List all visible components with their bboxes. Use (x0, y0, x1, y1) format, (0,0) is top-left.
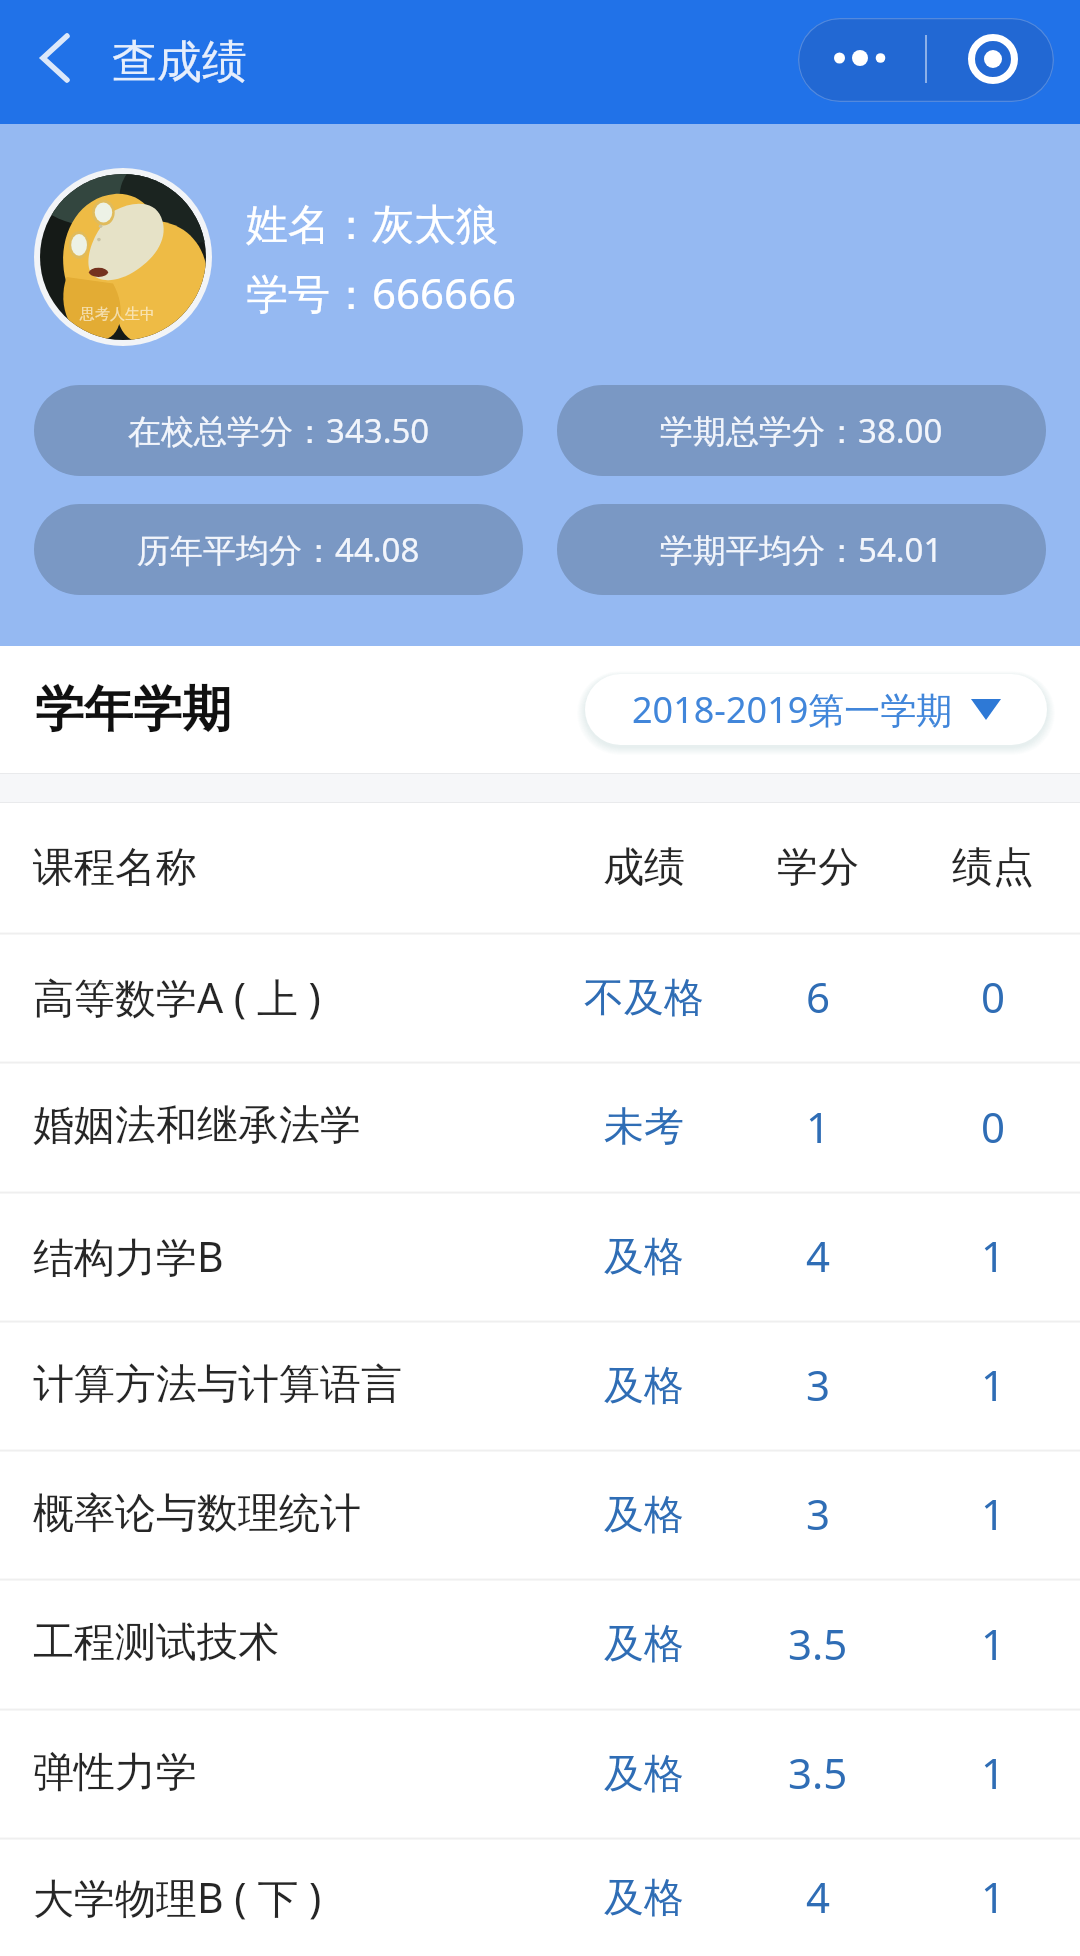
staticText: 2018-2019第一学期 (632, 685, 953, 734)
staticText: 及格 (604, 1872, 684, 1922)
staticText: 绩点 (952, 842, 1034, 894)
staticText: 1 (981, 1356, 1006, 1413)
button[interactable]: 弹性力学 (0, 1708, 1080, 1837)
button[interactable]: Back (20, 20, 92, 92)
staticText: 3 (806, 1356, 831, 1413)
staticText: 及格 (604, 1748, 684, 1798)
staticText: 0 (981, 1098, 1006, 1155)
button[interactable]: 学期平均分：54.01 (557, 504, 1046, 595)
staticText: 6 (806, 968, 831, 1025)
button[interactable]: 学期总学分：38.00 (557, 385, 1046, 476)
staticText: 历年平均分：44.08 (137, 527, 420, 572)
staticText: 及格 (604, 1618, 684, 1668)
staticText: 及格 (604, 1489, 684, 1539)
staticText: 4 (806, 1868, 831, 1925)
staticText: 4 (806, 1227, 831, 1284)
button[interactable]: 在校总学分：343.50 (34, 385, 523, 476)
staticText: 高等数学A ( 上 ) (33, 969, 321, 1025)
staticText: 思考人生中 (80, 305, 155, 324)
staticText: 1 (981, 1744, 1006, 1801)
button[interactable]: 结构力学B (0, 1191, 1080, 1320)
staticText: 学期总学分：38.00 (660, 408, 943, 453)
staticText: 概率论与数理统计 (33, 1488, 361, 1540)
staticText: 姓名：灰太狼 (246, 199, 498, 252)
staticText: 3 (806, 1485, 831, 1542)
staticText: 1 (981, 1615, 1006, 1672)
staticText: 0 (981, 968, 1006, 1025)
staticText: 课程名称 (33, 842, 197, 894)
button[interactable]: 工程测试技术 (0, 1578, 1080, 1708)
staticText: 在校总学分：343.50 (128, 408, 430, 453)
staticText: 大学物理B ( 下 ) (33, 1869, 322, 1925)
staticText: 及格 (604, 1231, 684, 1281)
staticText: 学年学期 (35, 679, 231, 741)
button[interactable]: 历年平均分：44.08 (34, 504, 523, 595)
staticText: 学号：666666 (246, 264, 517, 321)
staticText: 学期平均分：54.01 (660, 527, 943, 572)
staticText: 学分 (777, 842, 859, 894)
button[interactable]: 计算方法与计算语言 (0, 1320, 1080, 1449)
staticText: 成绩 (603, 842, 685, 894)
staticText: 及格 (604, 1360, 684, 1410)
button[interactable]: 大学物理B ( 下 ) (0, 1837, 1080, 1956)
button[interactable]: 高等数学A ( 上 ) (0, 932, 1080, 1061)
staticText: 不及格 (584, 972, 704, 1022)
staticText: 弹性力学 (33, 1747, 197, 1799)
staticText: 查成绩 (112, 34, 247, 91)
button[interactable]: 婚姻法和继承法学 (0, 1061, 1080, 1191)
staticText: 工程测试技术 (33, 1617, 279, 1669)
staticText: 3.5 (788, 1615, 848, 1672)
button[interactable]: More options (798, 18, 1054, 102)
staticText: 1 (981, 1868, 1006, 1925)
staticText: 1 (806, 1098, 831, 1155)
staticText: 未考 (604, 1101, 684, 1151)
staticText: 婚姻法和继承法学 (33, 1100, 361, 1152)
button[interactable]: 概率论与数理统计 (0, 1449, 1080, 1578)
button[interactable]: Avatar (40, 174, 206, 340)
button[interactable]: 2018-2019第一学期 (585, 674, 1047, 745)
staticText: 计算方法与计算语言 (33, 1359, 402, 1411)
staticText: 1 (981, 1227, 1006, 1284)
staticText: 结构力学B (33, 1228, 224, 1284)
staticText: 1 (981, 1485, 1006, 1542)
staticText: 3.5 (788, 1744, 848, 1801)
